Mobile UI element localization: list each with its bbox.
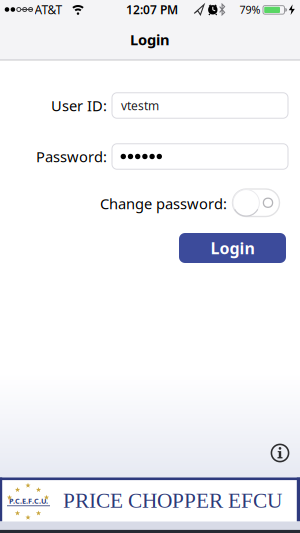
staticText: AT&T — [34, 2, 62, 18]
button[interactable]: Info — [270, 443, 289, 462]
staticText: 79% — [239, 3, 260, 17]
staticText: PRICE CHOPPER EFCU — [63, 489, 282, 512]
staticText: Password: — [36, 147, 107, 166]
button[interactable]: Password — [112, 144, 288, 169]
staticText: User ID: — [51, 96, 107, 115]
staticText: P.C.E.F.C.U. — [9, 496, 48, 506]
button[interactable]: User ID — [112, 93, 288, 118]
button[interactable]: Change password — [232, 188, 280, 217]
staticText: Login — [210, 237, 254, 259]
button[interactable]: Login — [179, 233, 286, 263]
staticText: vtestm — [121, 97, 159, 113]
staticText: Login — [130, 30, 170, 49]
staticText: Change password: — [100, 194, 227, 213]
staticText: 12:07 PM — [126, 2, 178, 18]
